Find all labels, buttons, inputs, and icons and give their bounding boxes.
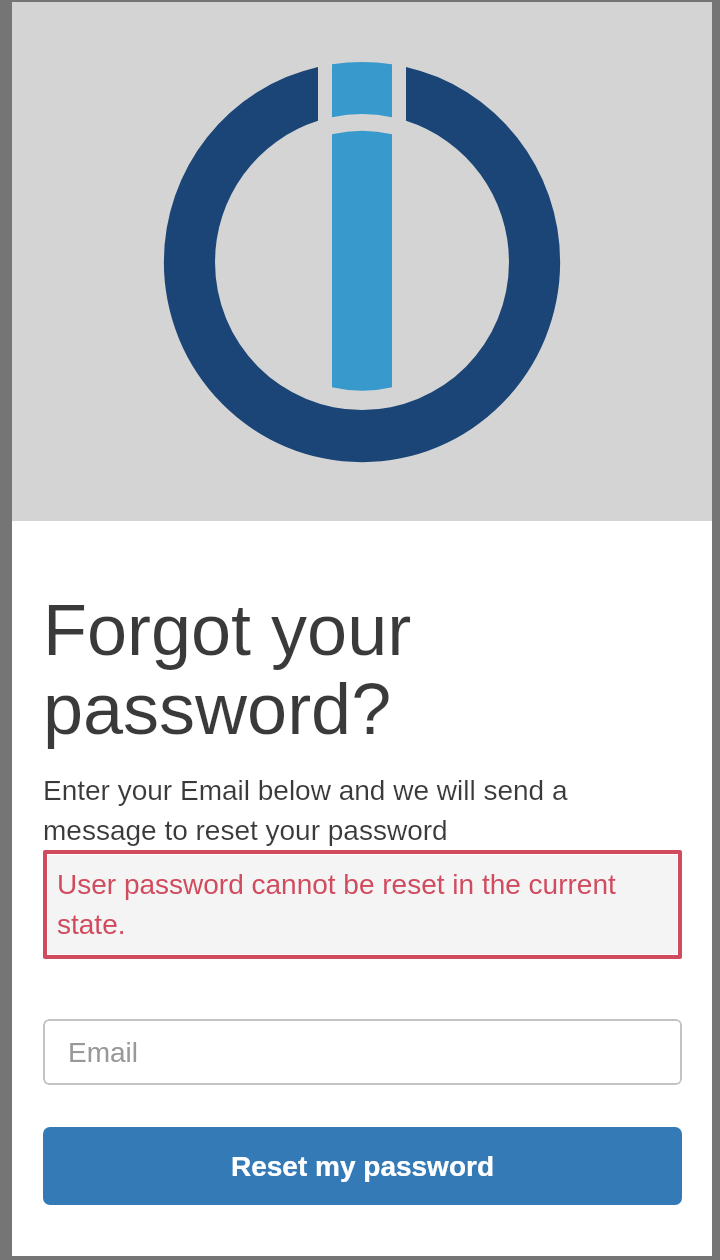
staticText: Enter your Email below and we will send … [43, 775, 568, 846]
staticText: Forgot your password? [43, 590, 412, 750]
other: Company logo [12, 2, 712, 521]
staticText: Email [68, 1037, 139, 1068]
button[interactable]: Reset my password [43, 1127, 682, 1205]
staticText: Reset my password [231, 1151, 494, 1182]
staticText: User password cannot be reset in the cur… [57, 869, 668, 940]
button[interactable]: Email [43, 1019, 682, 1085]
